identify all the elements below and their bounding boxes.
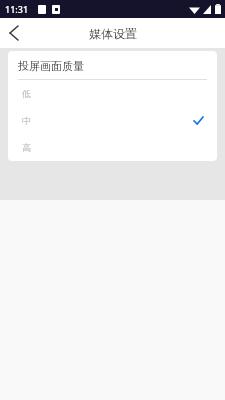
button[interactable]: 高 [8, 134, 217, 161]
button[interactable]: 中 [8, 107, 217, 134]
staticText: 11:31 [5, 3, 29, 15]
button[interactable]: 低 [8, 80, 217, 107]
staticText: 高 [22, 142, 31, 153]
staticText: 媒体设置 [89, 26, 137, 41]
button[interactable]: Back [0, 19, 28, 47]
staticText: 低 [22, 88, 31, 99]
staticText: 中 [22, 115, 31, 126]
staticText: 投屏画面质量 [18, 59, 84, 73]
